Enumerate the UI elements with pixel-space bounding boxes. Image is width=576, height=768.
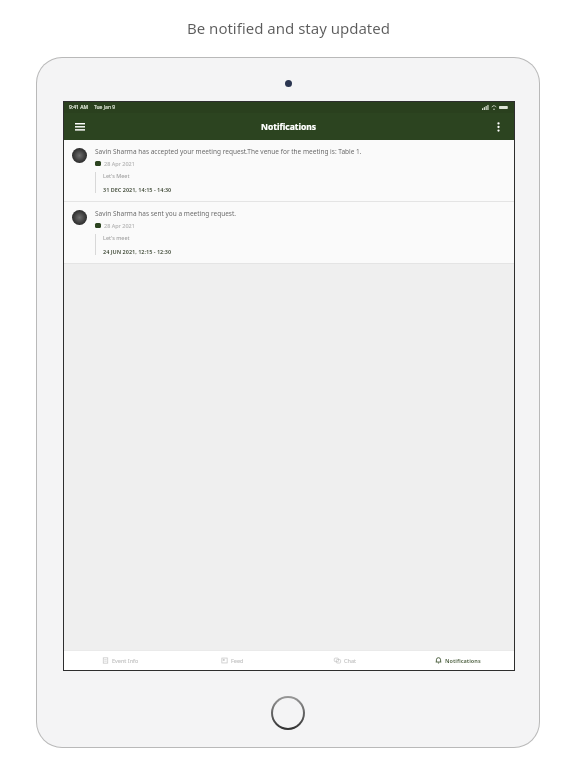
button[interactable]: Savin Sharma has sent you a meeting requ… [64,202,514,263]
staticText: 24 JUN 2021, 12:15 - 12:30 [103,248,172,255]
staticText: Tue Jan 9 [94,104,116,111]
staticText: Savin Sharma has accepted your meeting r… [95,147,362,156]
button[interactable]: Feed [176,650,288,670]
staticText: Savin Sharma has sent you a meeting requ… [95,209,237,218]
button[interactable]: Event Info [64,650,176,670]
staticText: Let's Meet [103,172,130,179]
button[interactable]: Menu [70,117,90,137]
button[interactable]: Savin Sharma has accepted your meeting r… [64,140,514,201]
staticText: 9:41 AM [69,104,89,111]
other: Home [273,698,303,728]
button[interactable]: More options [488,117,508,137]
button[interactable]: Notifications [401,650,514,670]
staticText: Notifications [445,657,481,664]
staticText: Notifications [261,121,317,133]
staticText: Let's meet [103,234,130,241]
staticText: 31 DEC 2021, 14:15 - 14:30 [103,186,172,193]
staticText: Chat [344,657,356,664]
staticText: Feed [231,657,244,664]
button[interactable]: Chat [288,650,401,670]
staticText: 28 Apr 2021 [104,222,135,229]
staticText: Event Info [112,657,139,664]
staticText: Be notified and stay updated [187,18,390,38]
staticText: 28 Apr 2021 [104,160,135,167]
